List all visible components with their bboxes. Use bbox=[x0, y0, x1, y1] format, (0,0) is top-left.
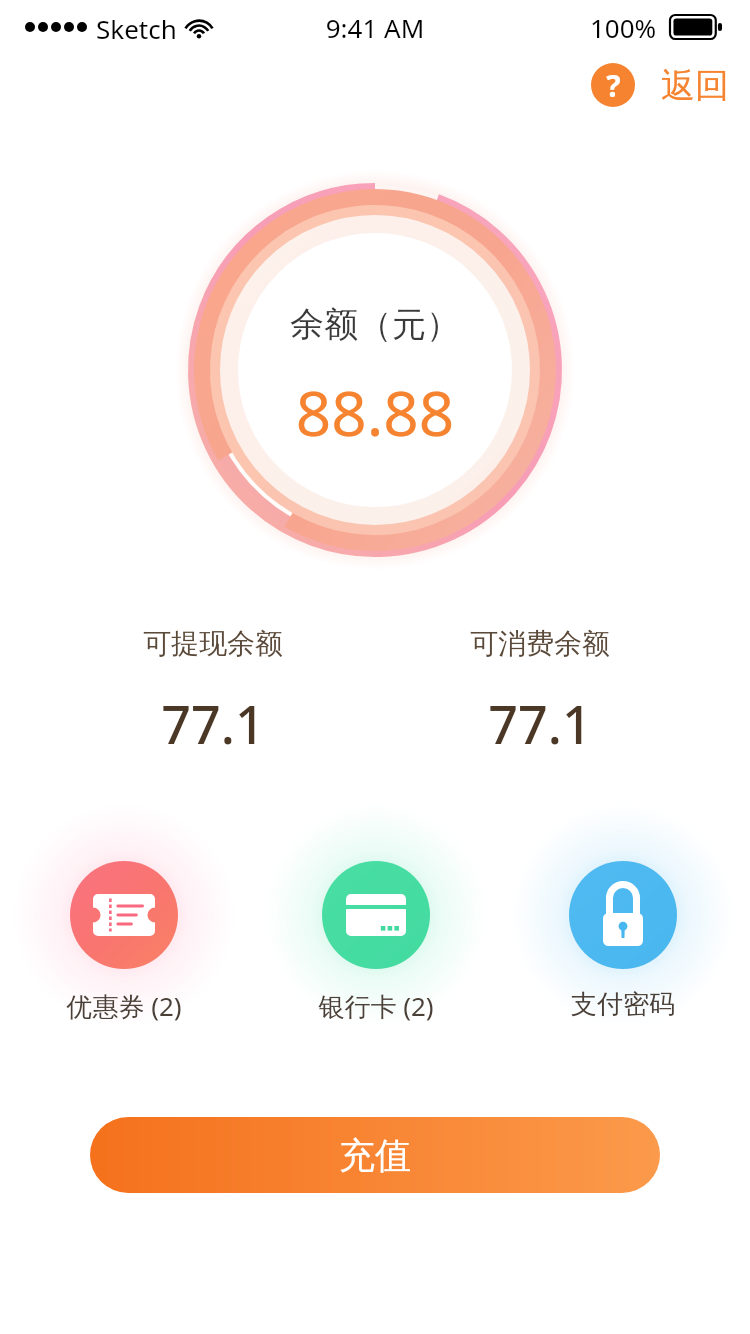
button[interactable]: 充值 bbox=[90, 1117, 660, 1193]
staticText: 77.1 bbox=[63, 688, 363, 758]
staticText: ? bbox=[606, 65, 621, 106]
button[interactable]: 银行卡 bbox=[261, 800, 491, 1040]
button[interactable]: Help bbox=[591, 63, 635, 107]
staticText: 银行卡 (2) bbox=[261, 988, 491, 1032]
staticText: 返回 bbox=[661, 64, 729, 107]
button[interactable]: 返回 bbox=[655, 60, 735, 110]
staticText: 100% bbox=[590, 10, 657, 44]
staticText: 可提现余额 bbox=[63, 626, 363, 672]
staticText: 支付密码 bbox=[508, 988, 738, 1032]
staticText: Sketch bbox=[96, 11, 177, 45]
staticText: 优惠券 (2) bbox=[9, 988, 239, 1032]
staticText: 9:41 AM bbox=[0, 10, 750, 44]
staticText: 77.1 bbox=[390, 688, 690, 758]
button[interactable]: 优惠券 bbox=[9, 800, 239, 1040]
staticText: 可消费余额 bbox=[390, 626, 690, 672]
button[interactable]: 支付密码 bbox=[508, 800, 738, 1040]
staticText: 余额（元） bbox=[0, 303, 750, 353]
staticText: 88.88 bbox=[0, 370, 750, 450]
staticText: 充值 bbox=[339, 1133, 411, 1178]
